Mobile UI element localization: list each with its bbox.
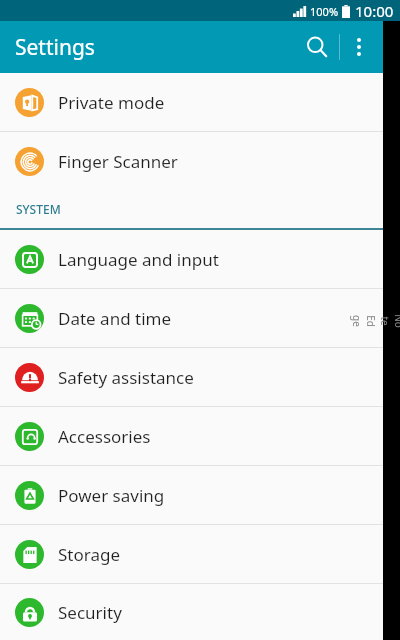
button[interactable]: Security <box>0 584 400 640</box>
button[interactable]: Search <box>295 25 339 69</box>
staticText: Language and input <box>58 248 219 271</box>
staticText: SYSTEM <box>16 201 61 217</box>
staticText: Private mode <box>58 91 165 114</box>
staticText: Power saving <box>58 484 165 507</box>
button[interactable]: Storage <box>0 525 400 583</box>
button[interactable]: Language and input <box>0 230 400 288</box>
staticText: Settings <box>15 33 95 62</box>
button[interactable]: Safety assistance <box>0 348 400 406</box>
staticText: Accessories <box>58 425 151 448</box>
staticText: Date and time <box>58 307 172 330</box>
staticText: Safety assistance <box>58 366 194 389</box>
staticText: Finger Scanner <box>58 150 178 173</box>
button[interactable]: Accessories <box>0 407 400 465</box>
button[interactable]: Finger Scanner <box>0 132 400 190</box>
staticText: Storage <box>58 543 121 566</box>
staticText: 10:00 <box>355 1 394 21</box>
staticText: Galaxy Note Edge <box>349 312 400 329</box>
button[interactable]: Power saving <box>0 466 400 524</box>
staticText: 100% <box>310 4 339 19</box>
button[interactable]: Private mode <box>0 73 400 131</box>
staticText: Security <box>58 601 122 624</box>
button[interactable]: Date and time <box>0 289 400 347</box>
button[interactable]: More options <box>340 28 378 66</box>
